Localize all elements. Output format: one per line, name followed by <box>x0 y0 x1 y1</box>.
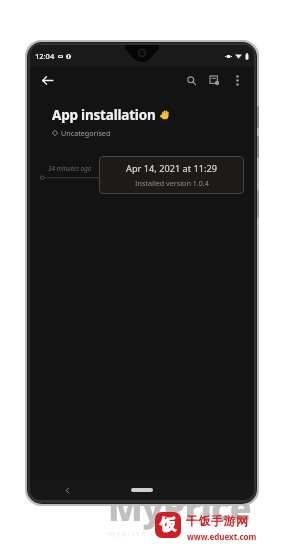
button[interactable]: Search <box>182 71 200 89</box>
button[interactable]: Apr 14, 2021 at 11:29 <box>99 156 244 194</box>
staticText: www.eduext.com <box>187 531 257 542</box>
staticText: 34 minutes ago <box>48 164 92 173</box>
staticText: Apr 14, 2021 at 11:29 <box>126 162 217 175</box>
staticText: 12:04 <box>35 51 55 61</box>
staticText: 干饭手游网 <box>186 513 249 528</box>
staticText: Uncategorised <box>61 128 111 138</box>
button[interactable]: Back <box>60 483 74 497</box>
button[interactable]: Home <box>131 488 153 492</box>
button[interactable]: More options <box>228 71 246 89</box>
staticText: Installed version 1.0.4 <box>135 178 209 188</box>
staticText: App installation <box>52 106 156 124</box>
staticText: m y p r i c e . c o m <box>108 529 169 539</box>
staticText: MyPrice <box>108 483 251 532</box>
staticText: 饭 <box>160 515 176 535</box>
button[interactable]: Save <box>205 71 223 89</box>
button[interactable]: Back <box>38 71 56 89</box>
